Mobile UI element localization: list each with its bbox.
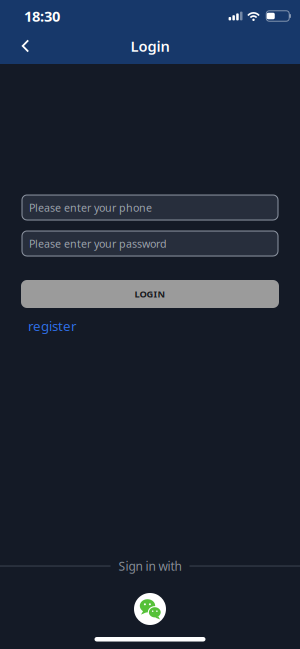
staticText: Please enter your phone	[29, 200, 152, 215]
button[interactable]: LOGIN	[21, 280, 279, 308]
staticText: register	[28, 317, 77, 335]
staticText: Sign in with	[118, 558, 181, 574]
staticText: 18:30	[24, 6, 60, 26]
button[interactable]: Please enter your password	[22, 231, 278, 256]
button[interactable]	[0, 40, 39, 52]
staticText: Please enter your password	[29, 236, 167, 251]
button[interactable]: register	[28, 317, 77, 335]
button[interactable]	[134, 593, 166, 625]
staticText: LOGIN	[134, 288, 165, 300]
button[interactable]: Please enter your phone	[22, 195, 278, 220]
staticText: Login	[130, 36, 169, 56]
